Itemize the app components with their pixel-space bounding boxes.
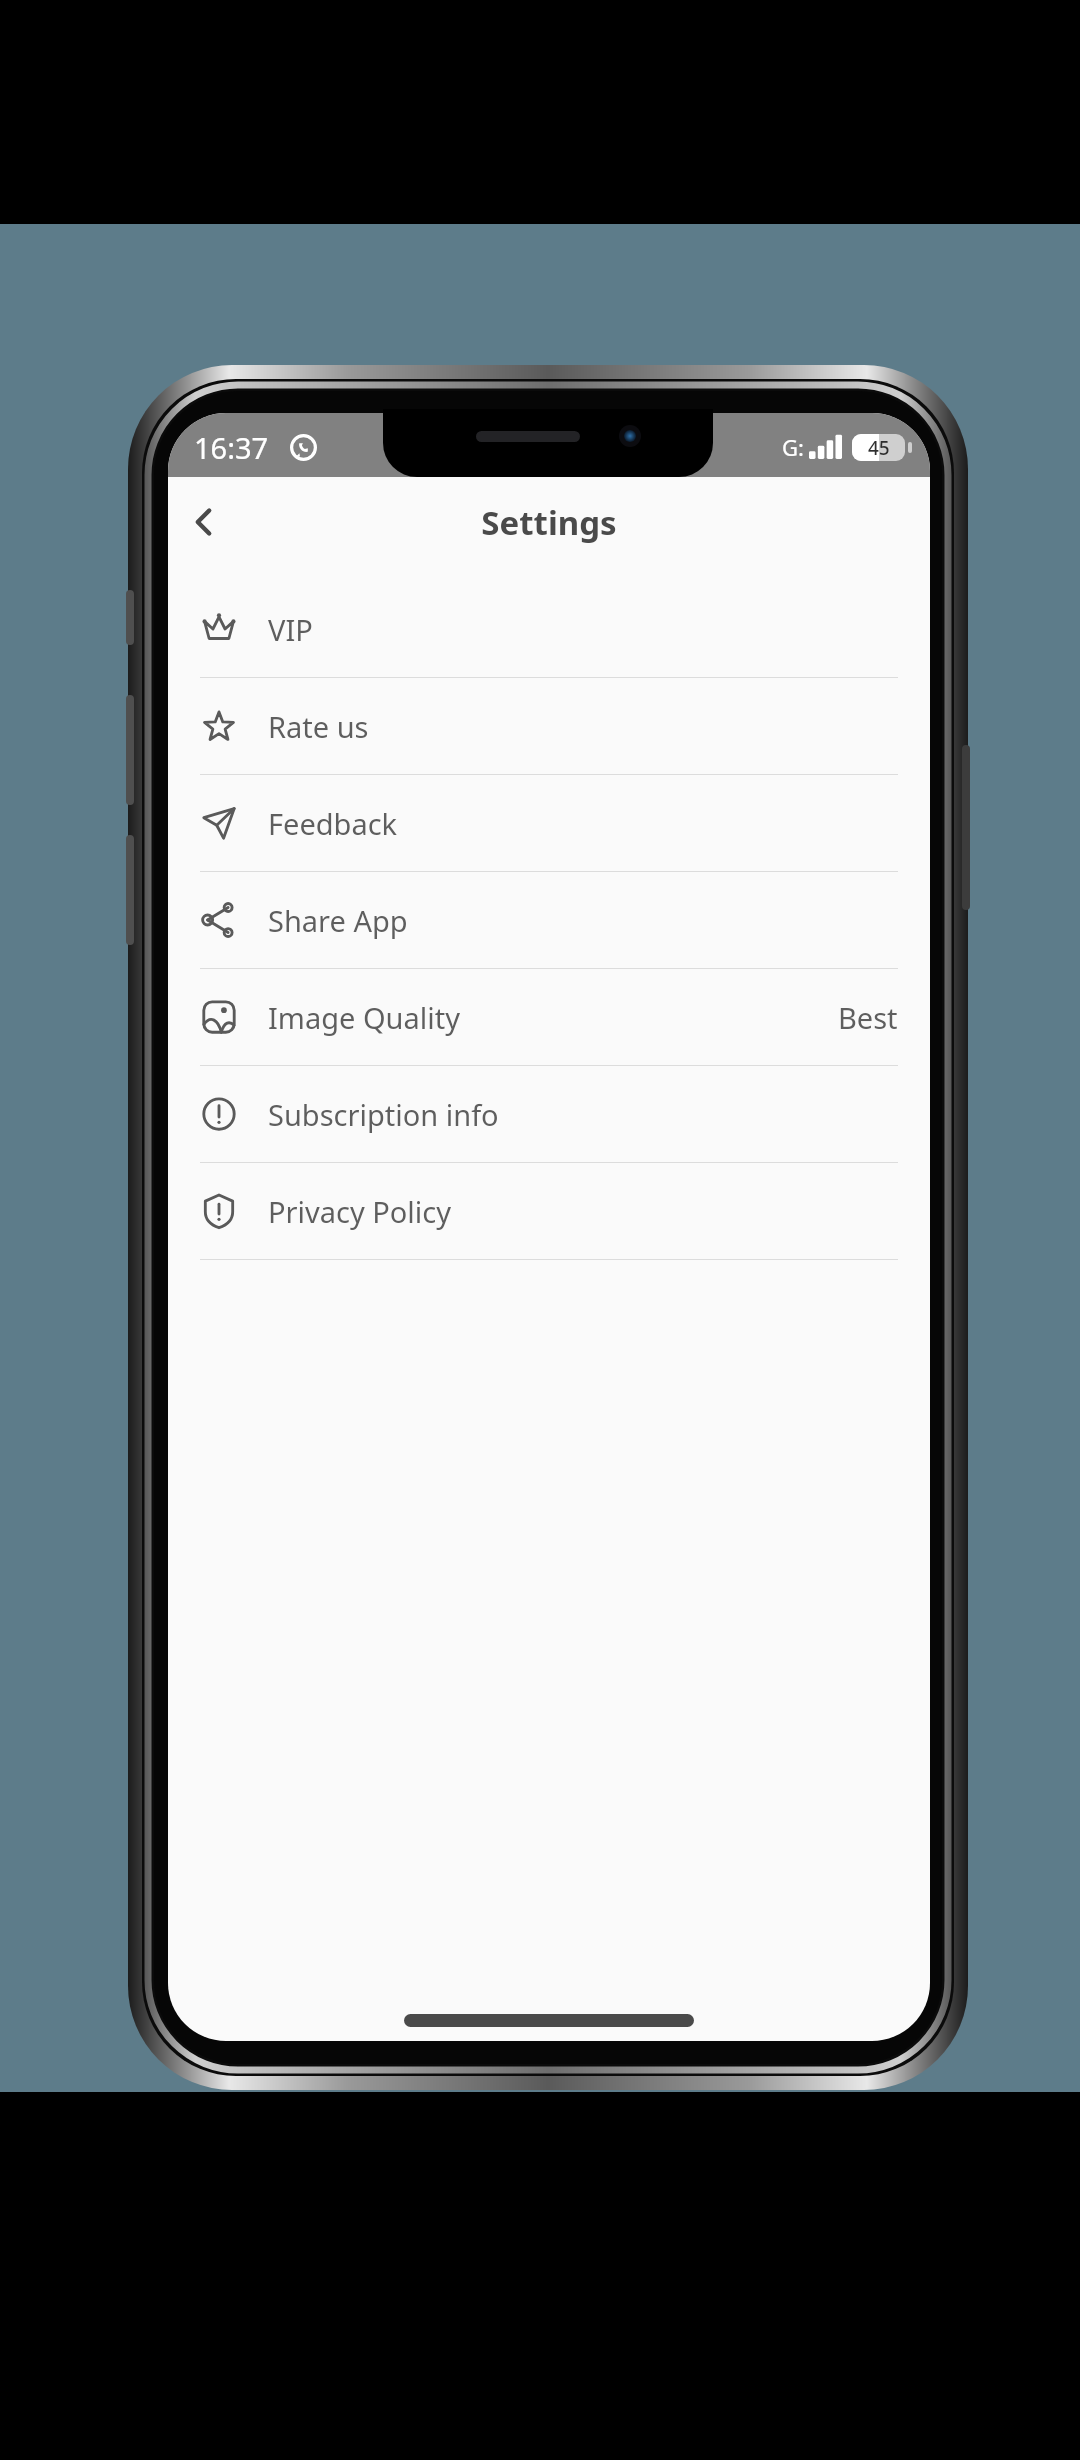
- staticText: 45: [868, 435, 890, 461]
- button[interactable]: Share App: [168, 872, 930, 968]
- button[interactable]: Privacy Policy: [168, 1163, 930, 1259]
- staticText: Subscription info: [268, 1095, 499, 1134]
- staticText: G:: [782, 432, 804, 462]
- staticText: Feedback: [268, 804, 398, 843]
- staticText: VIP: [268, 610, 313, 649]
- staticText: Share App: [268, 901, 408, 940]
- staticText: 16:37: [194, 428, 269, 467]
- staticText: Rate us: [268, 707, 369, 746]
- staticText: Settings: [481, 500, 617, 545]
- staticText: Privacy Policy: [268, 1192, 452, 1231]
- staticText: Best: [838, 998, 898, 1037]
- button[interactable]: Back: [176, 494, 232, 550]
- button[interactable]: VIP: [168, 581, 930, 677]
- button[interactable]: Image Quality: [168, 969, 930, 1065]
- button[interactable]: Feedback: [168, 775, 930, 871]
- button[interactable]: Rate us: [168, 678, 930, 774]
- staticText: Image Quality: [268, 998, 461, 1037]
- button[interactable]: Subscription info: [168, 1066, 930, 1162]
